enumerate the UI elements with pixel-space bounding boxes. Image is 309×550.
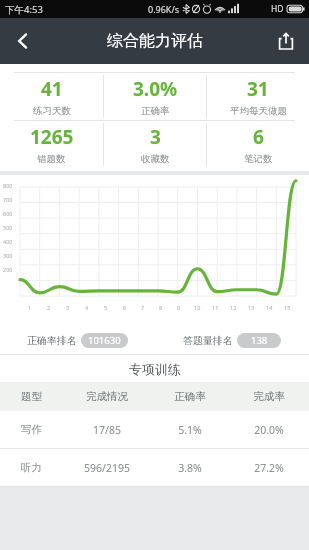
staticText: 3 — [66, 304, 70, 311]
staticText: 0.96K/s — [148, 3, 180, 15]
staticText: 31 — [247, 76, 269, 102]
staticText: HD — [271, 3, 284, 15]
staticText: 3.8% — [178, 461, 202, 475]
staticText: 5.1% — [178, 423, 202, 437]
staticText: 500 — [3, 224, 13, 231]
staticText: 题型 — [21, 390, 42, 403]
staticText: 练习天数 — [33, 105, 71, 117]
staticText: 15 — [284, 304, 291, 311]
staticText: 600 — [3, 210, 13, 217]
staticText: 5 — [104, 304, 108, 311]
staticText: 41 — [41, 76, 63, 102]
staticText: 2 — [47, 304, 51, 311]
staticText: 7 — [141, 304, 145, 311]
staticText: 11 — [212, 304, 219, 311]
staticText: 200 — [3, 266, 13, 273]
staticText: 收藏数 — [141, 153, 170, 165]
staticText: 400 — [3, 238, 13, 245]
staticText: 1265 — [30, 124, 74, 150]
staticText: 4 — [85, 304, 89, 311]
staticText: 300 — [3, 252, 13, 259]
staticText: 完成率 — [253, 390, 285, 403]
staticText: 专项训练 — [129, 361, 181, 377]
button[interactable]: Share — [263, 18, 309, 64]
staticText: 正确率排名 — [27, 334, 77, 347]
staticText: 20.0% — [254, 423, 284, 437]
staticText: 12 — [230, 304, 237, 311]
staticText: 6 — [253, 124, 264, 150]
staticText: 700 — [3, 196, 13, 203]
button[interactable]: 听力 — [0, 449, 309, 486]
staticText: 完成情况 — [86, 390, 128, 403]
staticText: 3.0% — [133, 76, 178, 102]
button[interactable]: 写作 — [0, 411, 309, 448]
staticText: 写作 — [21, 423, 42, 436]
staticText: 综合能力评估 — [107, 31, 203, 51]
staticText: 正确率 — [174, 390, 206, 403]
button[interactable]: 正确率排名 — [0, 327, 154, 354]
staticText: 10 — [194, 304, 201, 311]
staticText: 9 — [177, 304, 181, 311]
button[interactable]: 答题量排名 — [154, 327, 309, 354]
staticText: 正确率 — [141, 105, 170, 117]
staticText: 8 — [159, 304, 163, 311]
staticText: 27.2% — [254, 461, 284, 475]
staticText: 596/2195 — [84, 461, 130, 475]
staticText: 听力 — [21, 461, 42, 474]
staticText: 笔记数 — [244, 153, 273, 165]
staticText: 1 — [28, 304, 32, 311]
staticText: 答题量排名 — [183, 334, 233, 347]
staticText: 3 — [150, 124, 161, 150]
staticText: 错题数 — [37, 153, 66, 165]
staticText: 138 — [251, 334, 268, 347]
staticText: 17/85 — [93, 423, 121, 437]
staticText: 14 — [266, 304, 273, 311]
staticText: 101630 — [88, 334, 121, 347]
button[interactable]: Back — [0, 18, 46, 64]
staticText: 13 — [248, 304, 255, 311]
staticText: 6 — [123, 304, 127, 311]
staticText: 平均每天做题 — [230, 105, 287, 117]
staticText: 下午4:53 — [5, 3, 43, 16]
staticText: 800 — [3, 182, 13, 189]
